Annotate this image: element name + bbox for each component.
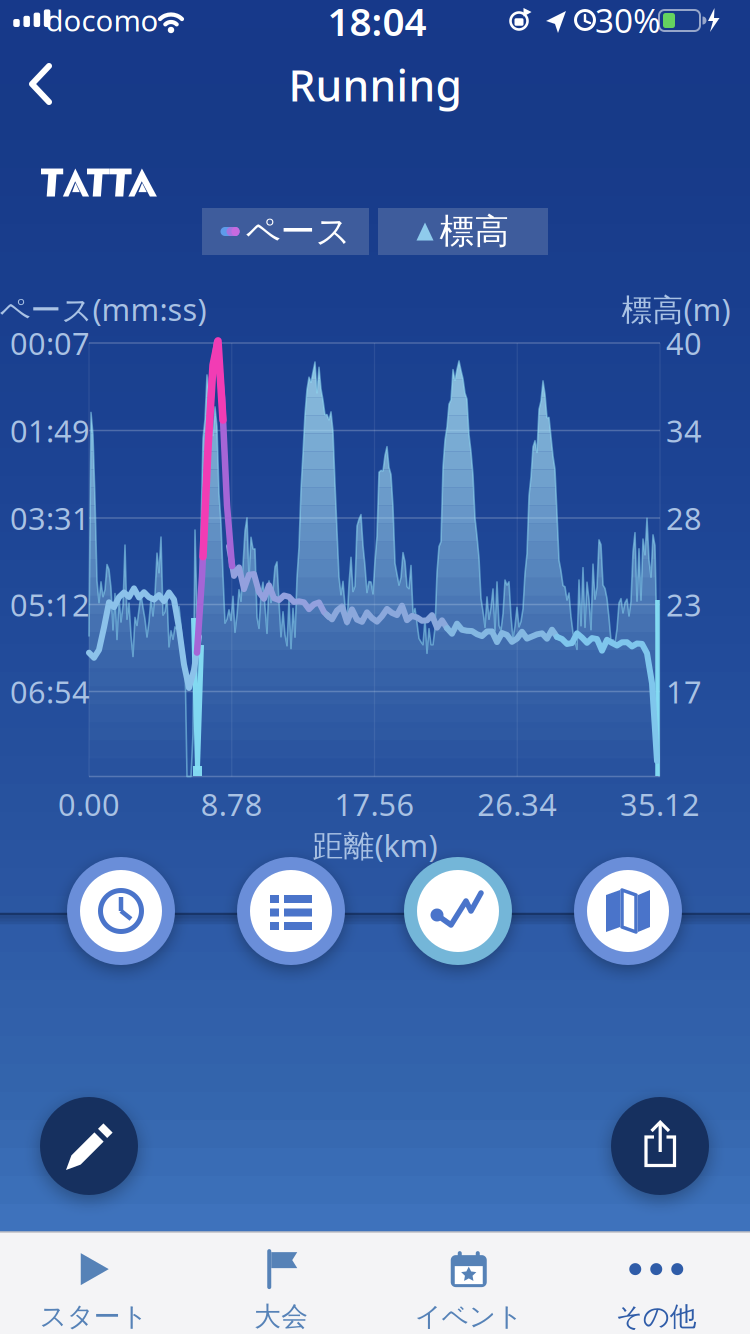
staticText: 35.12 xyxy=(620,784,700,824)
staticText: 標高 xyxy=(439,210,509,253)
staticText: 標高(m) xyxy=(621,289,730,329)
staticText: 23 xyxy=(666,584,702,625)
staticText: 距離(km) xyxy=(312,825,437,865)
button[interactable]: Back xyxy=(10,54,70,114)
staticText: 17 xyxy=(666,671,702,712)
staticText: 40 xyxy=(666,323,702,363)
button[interactable]: 大会 xyxy=(188,1243,375,1334)
button[interactable]: Chart xyxy=(404,857,512,965)
staticText: docomo xyxy=(45,0,158,39)
staticText: 26.34 xyxy=(477,784,557,824)
staticText: 34 xyxy=(666,410,702,451)
button[interactable]: 標高 xyxy=(378,208,548,255)
button[interactable]: Time xyxy=(67,857,175,965)
button[interactable]: スタート xyxy=(0,1243,187,1334)
staticText: 8.78 xyxy=(201,784,263,824)
button[interactable]: Map xyxy=(574,857,682,965)
button[interactable]: Share xyxy=(611,1097,709,1195)
staticText: ペース(mm:ss) xyxy=(0,289,206,329)
button[interactable]: ペース xyxy=(202,208,369,255)
staticText: 06:54 xyxy=(10,671,90,712)
staticText: 03:31 xyxy=(10,498,90,538)
staticText: Running xyxy=(288,57,461,113)
staticText: ペース xyxy=(245,210,350,253)
staticText: 05:12 xyxy=(10,584,90,625)
staticText: 01:49 xyxy=(10,410,90,451)
staticText: その他 xyxy=(616,1300,697,1333)
button[interactable]: その他 xyxy=(563,1243,750,1334)
staticText: スタート xyxy=(40,1300,148,1333)
button[interactable]: Edit xyxy=(40,1097,138,1195)
button[interactable]: Laps xyxy=(237,857,345,965)
staticText: 00:07 xyxy=(10,323,90,363)
staticText: 30% xyxy=(595,0,661,42)
staticText: 大会 xyxy=(254,1300,308,1333)
staticText: イベント xyxy=(415,1300,523,1333)
staticText: 0.00 xyxy=(58,784,120,824)
staticText: 18:04 xyxy=(327,0,426,47)
button[interactable]: イベント xyxy=(375,1243,562,1334)
staticText: 28 xyxy=(666,498,702,538)
staticText: 17.56 xyxy=(334,784,414,824)
